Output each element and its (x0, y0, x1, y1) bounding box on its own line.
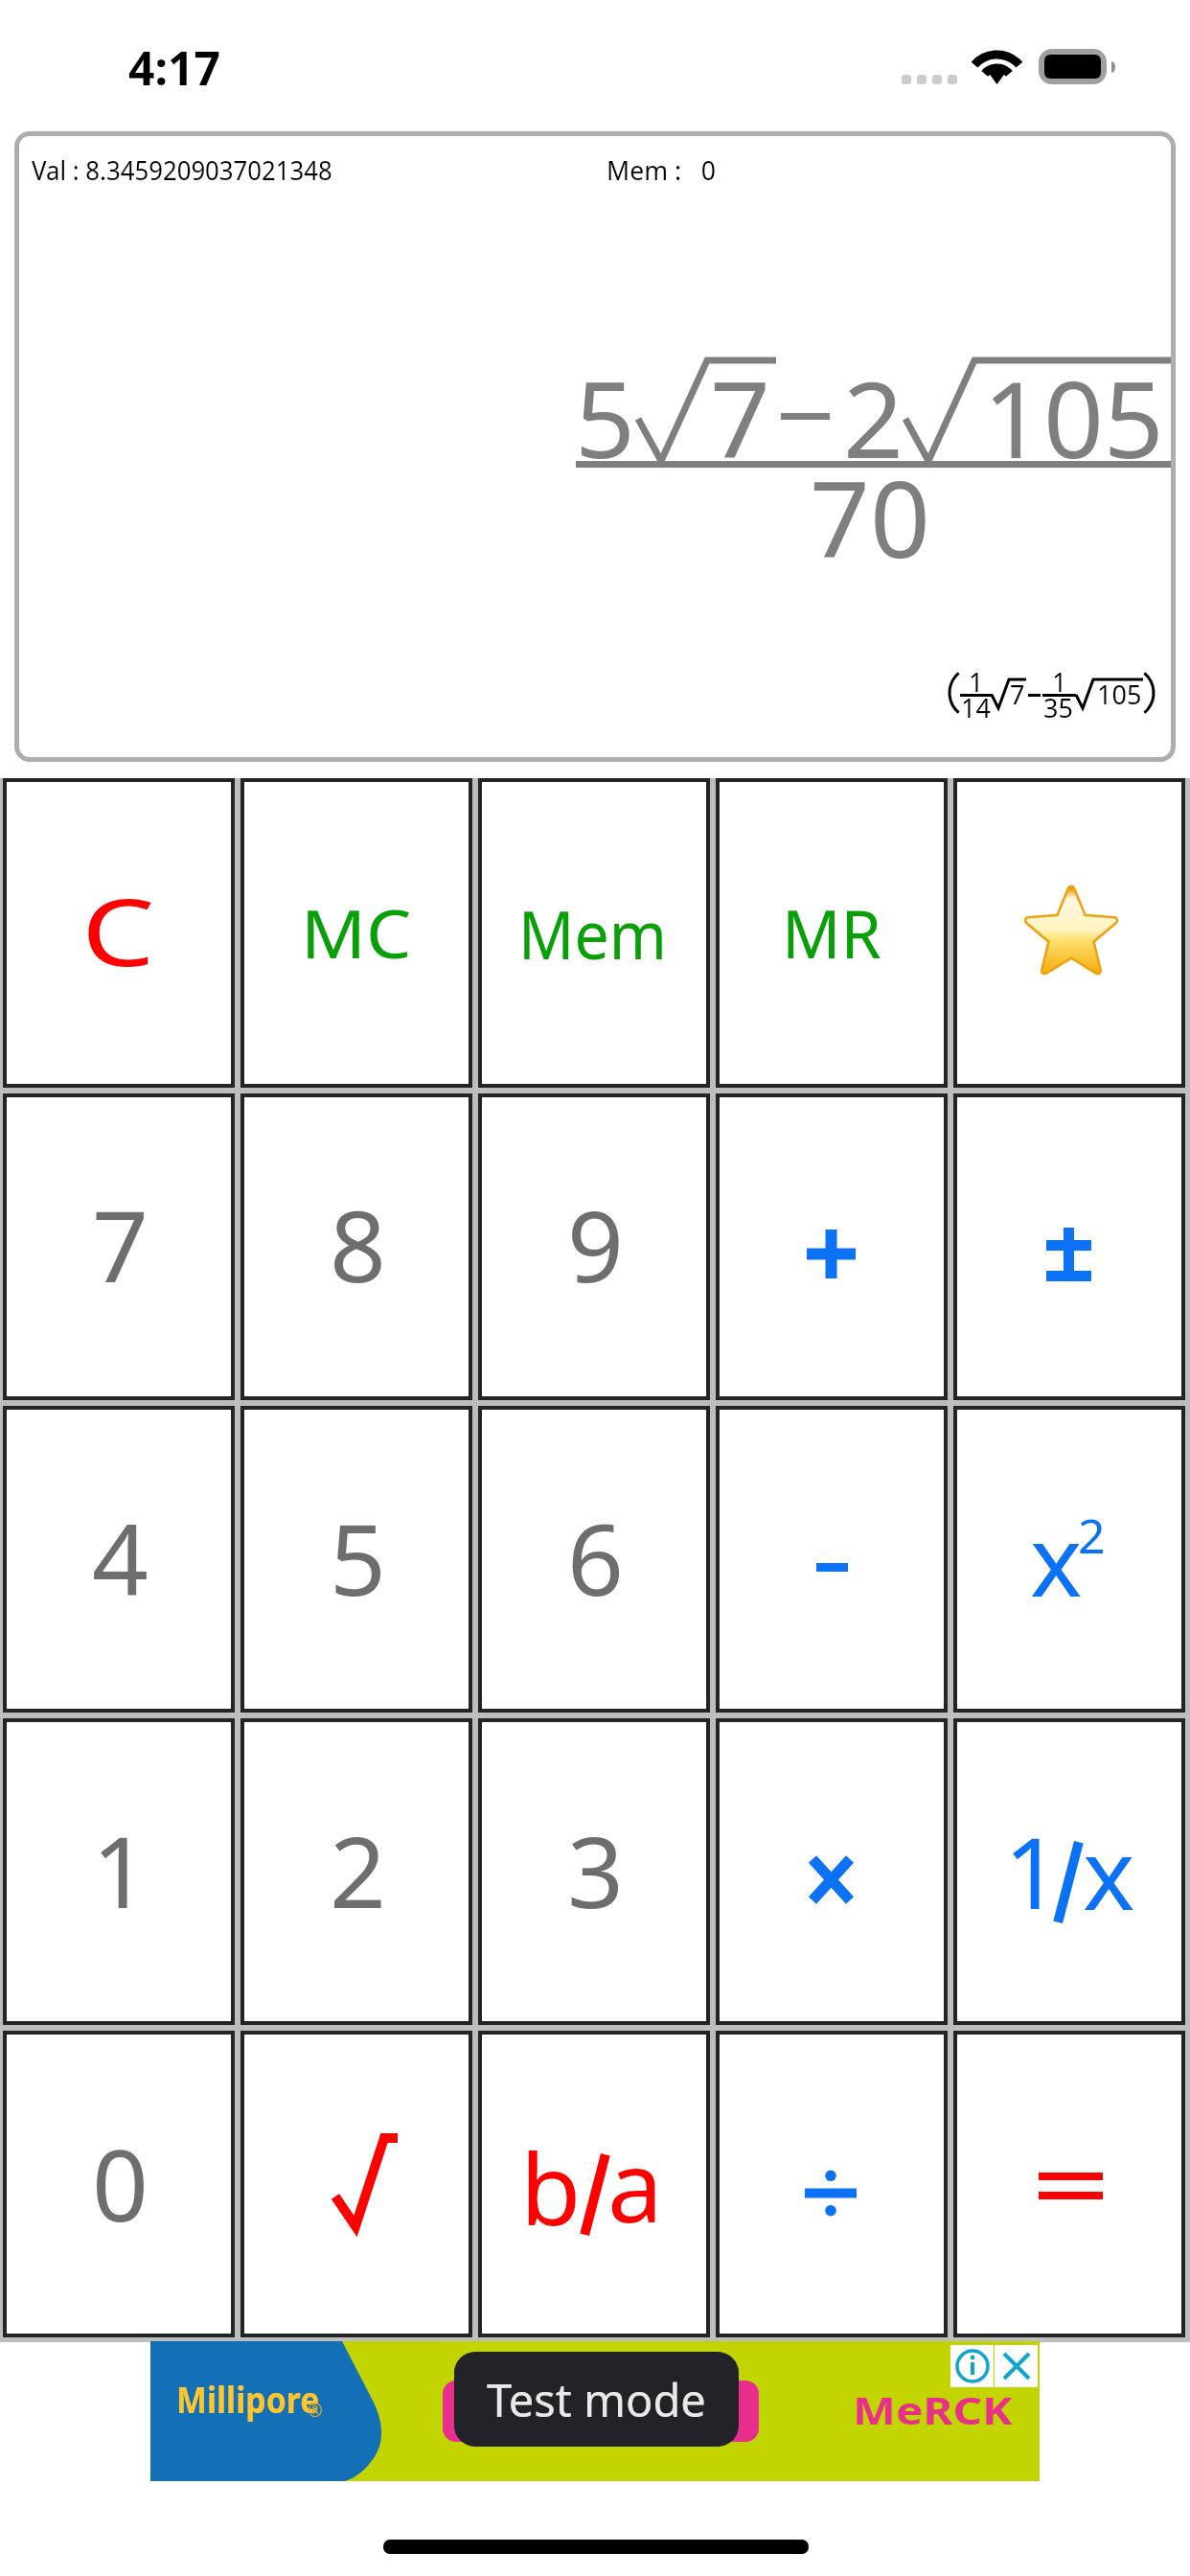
button[interactable] (716, 1718, 948, 2025)
button[interactable] (240, 1406, 472, 1713)
staticText: 7 (710, 345, 770, 489)
button[interactable] (240, 2031, 472, 2337)
button[interactable] (478, 1406, 710, 1713)
staticText: MeRCK (853, 2383, 1014, 2435)
staticText: 105 (983, 345, 1164, 489)
button[interactable] (716, 1406, 948, 1713)
staticText: MC (301, 886, 412, 977)
staticText: 1 (1004, 1804, 1061, 1938)
staticText: 2 (330, 1803, 386, 1937)
button[interactable] (3, 778, 235, 1088)
staticText: 7 (1010, 677, 1025, 712)
button[interactable] (3, 2031, 235, 2337)
button[interactable] (240, 1718, 472, 2025)
button[interactable] (3, 1406, 235, 1713)
staticText: x (1083, 1805, 1135, 1939)
staticText: ® (308, 2398, 323, 2423)
button[interactable] (478, 1718, 710, 2025)
button[interactable] (478, 1093, 710, 1400)
staticText: 8 (330, 1177, 386, 1311)
button[interactable] (716, 2031, 948, 2337)
button[interactable] (3, 1093, 235, 1400)
staticText: 9 (567, 1177, 624, 1311)
button[interactable]: Favourite (953, 778, 1185, 1088)
staticText: Millipore (176, 2374, 320, 2424)
staticText: 1 (92, 1803, 149, 1937)
button[interactable] (953, 1406, 1185, 1713)
button[interactable] (953, 1718, 1185, 2025)
staticText: 7 (92, 1177, 149, 1311)
button[interactable] (953, 2031, 1185, 2337)
button[interactable] (240, 1093, 472, 1400)
staticText: a (607, 2117, 663, 2251)
staticText: Val : 8.3459209037021348 (32, 151, 333, 188)
staticText: 2 (843, 345, 904, 489)
button[interactable] (953, 1093, 1185, 1400)
staticText: 3 (567, 1803, 624, 1937)
button[interactable] (240, 778, 472, 1088)
staticText: C (81, 867, 155, 993)
staticText: 4 (92, 1490, 149, 1624)
button[interactable] (478, 778, 710, 1088)
button[interactable]: Close ad (995, 2345, 1038, 2387)
staticText: x (1030, 1491, 1083, 1625)
staticText: 5 (330, 1490, 386, 1624)
staticText: 1 (1052, 664, 1067, 700)
staticText: 105 (1097, 677, 1142, 712)
staticText: b (520, 2120, 582, 2254)
staticText: MR (782, 886, 882, 977)
button[interactable] (716, 1093, 948, 1400)
staticText: 2 (1078, 1503, 1106, 1568)
staticText: 70 (810, 445, 930, 588)
button[interactable] (716, 778, 948, 1088)
staticText: 4:17 (128, 36, 220, 99)
staticText: 6 (567, 1490, 624, 1624)
staticText: 14 (961, 690, 991, 725)
button[interactable]: Ad info (950, 2345, 994, 2387)
staticText: 5 (575, 345, 635, 489)
staticText: 0 (92, 2116, 149, 2250)
staticText: 35 (1043, 690, 1073, 725)
staticText: Mem (518, 887, 667, 978)
staticText: 1 (969, 664, 984, 700)
staticText: Mem : 0 (606, 151, 717, 188)
staticText: Test mode (487, 2369, 706, 2430)
button[interactable] (3, 1718, 235, 2025)
button[interactable] (478, 2031, 710, 2337)
